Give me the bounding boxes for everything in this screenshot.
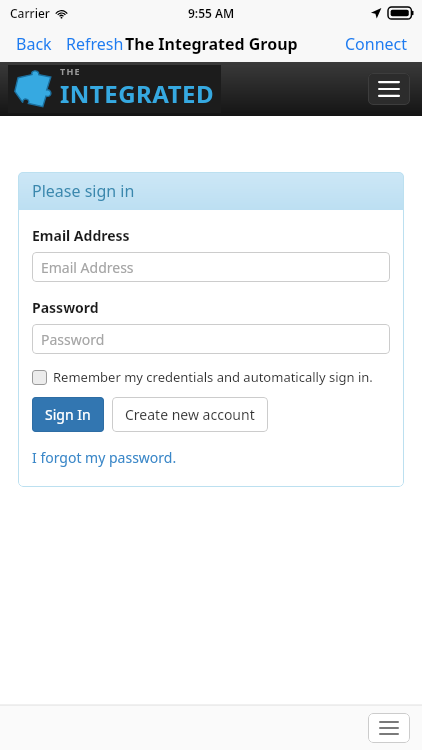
button[interactable]: THE [8, 65, 221, 113]
button[interactable]: Back [14, 30, 54, 58]
staticText: Create new account [125, 405, 255, 424]
staticText: INTEGRATED [60, 77, 215, 110]
staticText: Back [16, 33, 52, 55]
staticText: Carrier [10, 5, 50, 21]
button[interactable]: Refresh [64, 30, 126, 58]
staticText: Email Address [32, 226, 130, 245]
staticText: Refresh [66, 33, 124, 55]
staticText: Sign In [45, 405, 91, 424]
staticText: Please sign in [32, 180, 135, 202]
button[interactable]: Password [32, 324, 390, 354]
button[interactable]: Create new account [112, 397, 268, 432]
staticText: The Integrated Group [125, 33, 298, 55]
staticText: I forgot my password. [32, 448, 177, 467]
button[interactable]: I forgot my password. [32, 448, 177, 467]
button[interactable]: Sign In [32, 397, 104, 432]
staticText: Password [32, 298, 99, 317]
staticText: Connect [345, 33, 408, 55]
button[interactable]: Email Address [32, 252, 390, 282]
button[interactable]: Menu [368, 713, 410, 743]
staticText: Email Address [41, 258, 134, 277]
staticText: Remember my credentials and automaticall… [53, 368, 373, 386]
button[interactable]: Menu [368, 73, 410, 105]
button[interactable]: Remember my credentials and automaticall… [32, 368, 390, 386]
button[interactable]: Connect [343, 30, 410, 58]
staticText: Password [41, 330, 105, 349]
staticText: 9:55 AM [188, 5, 235, 21]
staticText: THE [60, 65, 81, 77]
